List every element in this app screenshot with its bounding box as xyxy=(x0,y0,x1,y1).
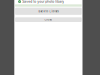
staticText: Close xyxy=(44,18,52,21)
button[interactable]: Close xyxy=(15,17,82,22)
staticText: Back to Library xyxy=(38,10,58,13)
staticText: Saved to your photo libary xyxy=(22,0,64,4)
button[interactable]: Back to Library xyxy=(15,8,82,15)
